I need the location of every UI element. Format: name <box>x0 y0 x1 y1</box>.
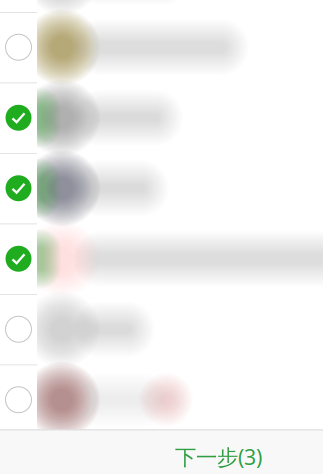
staticText: 下一步(3) <box>175 442 262 471</box>
button[interactable]: 下一步(3) <box>163 435 274 474</box>
button[interactable]: Unselected contact <box>0 294 37 364</box>
button[interactable]: Unselected contact <box>0 12 37 82</box>
button[interactable]: Selected contact <box>0 82 37 153</box>
button[interactable]: Unselected contact <box>0 364 37 435</box>
button[interactable]: Selected contact <box>0 223 37 294</box>
button[interactable]: Selected contact <box>0 153 37 223</box>
